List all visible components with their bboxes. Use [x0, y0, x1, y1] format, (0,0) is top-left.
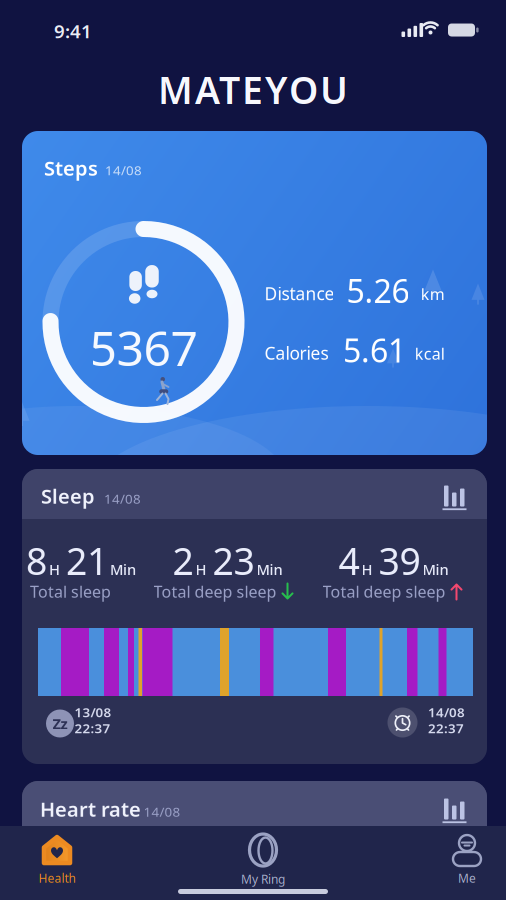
staticText: Zz [52, 714, 67, 733]
staticText: 2 [172, 536, 193, 585]
staticText: 5.61 [343, 329, 406, 371]
staticText: kcal [415, 343, 445, 364]
staticText: 39 [379, 536, 421, 585]
button[interactable]: Health [12, 830, 102, 890]
staticText: Steps [44, 155, 98, 181]
staticText: Distance [264, 282, 334, 305]
staticText: 22:37 [428, 719, 464, 737]
staticText: Health [38, 870, 75, 886]
staticText: 5367 [89, 316, 197, 379]
staticText: H [49, 560, 60, 579]
staticText: My Ring [241, 871, 285, 887]
staticText: Me [458, 870, 476, 886]
button[interactable]: Steps [22, 131, 487, 455]
staticText: H [195, 560, 206, 579]
staticText: 14/08 [143, 803, 180, 820]
staticText: Total deep sleep [153, 581, 276, 602]
staticText: 21 [66, 536, 108, 585]
staticText: 4 [339, 536, 360, 585]
staticText: Min [423, 560, 449, 579]
button[interactable]: Heart rate [22, 781, 487, 900]
button[interactable]: Sleep [22, 469, 487, 764]
button[interactable] [442, 797, 466, 821]
staticText: Total sleep [30, 581, 111, 602]
staticText: Min [256, 560, 282, 579]
staticText: Calories [264, 341, 328, 364]
staticText: 8 [26, 536, 47, 585]
staticText: 23 [212, 536, 254, 585]
staticText: Min [110, 560, 136, 579]
button[interactable] [442, 484, 466, 508]
staticText: MATEYOU [158, 65, 348, 114]
staticText: Heart rate [40, 796, 141, 822]
staticText: Total deep sleep [322, 581, 445, 602]
staticText: 14/08 [105, 161, 142, 179]
staticText: 14/08 [104, 490, 141, 507]
button[interactable]: Me [427, 830, 506, 890]
staticText: km [421, 283, 445, 305]
staticText: H [362, 560, 373, 579]
staticText: 5.26 [346, 269, 409, 312]
staticText: 9:41 [54, 19, 92, 43]
staticText: 14/08 [428, 703, 465, 721]
staticText: 13/08 [74, 703, 111, 721]
staticText: Sleep [41, 483, 95, 509]
staticText: 22:37 [74, 719, 110, 737]
button[interactable]: My Ring [218, 830, 308, 890]
